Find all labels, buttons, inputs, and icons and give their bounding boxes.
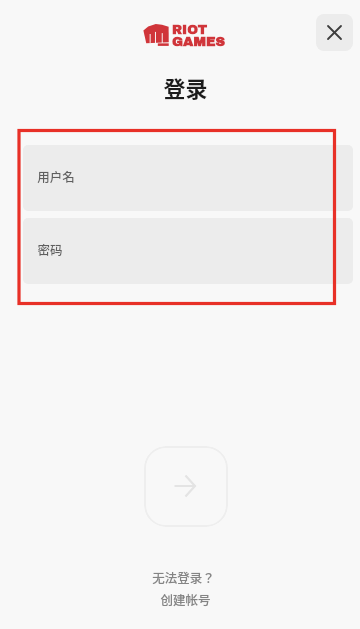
staticText: 登录 [163,71,208,103]
button[interactable]: 用户名 [23,145,353,211]
button[interactable]: 创建帐号 [160,590,211,608]
button[interactable]: 密码 [23,218,353,284]
staticText: RIOT [172,23,208,37]
staticText: 用户名 [37,167,75,185]
button[interactable]: Sign in [144,446,228,527]
staticText: 密码 [37,240,63,258]
staticText: 无法登录？ [152,568,215,586]
staticText: 创建帐号 [160,590,211,608]
button[interactable]: Close [316,14,353,51]
staticText: GAMES [172,34,226,48]
button[interactable]: 无法登录？ [152,568,215,586]
